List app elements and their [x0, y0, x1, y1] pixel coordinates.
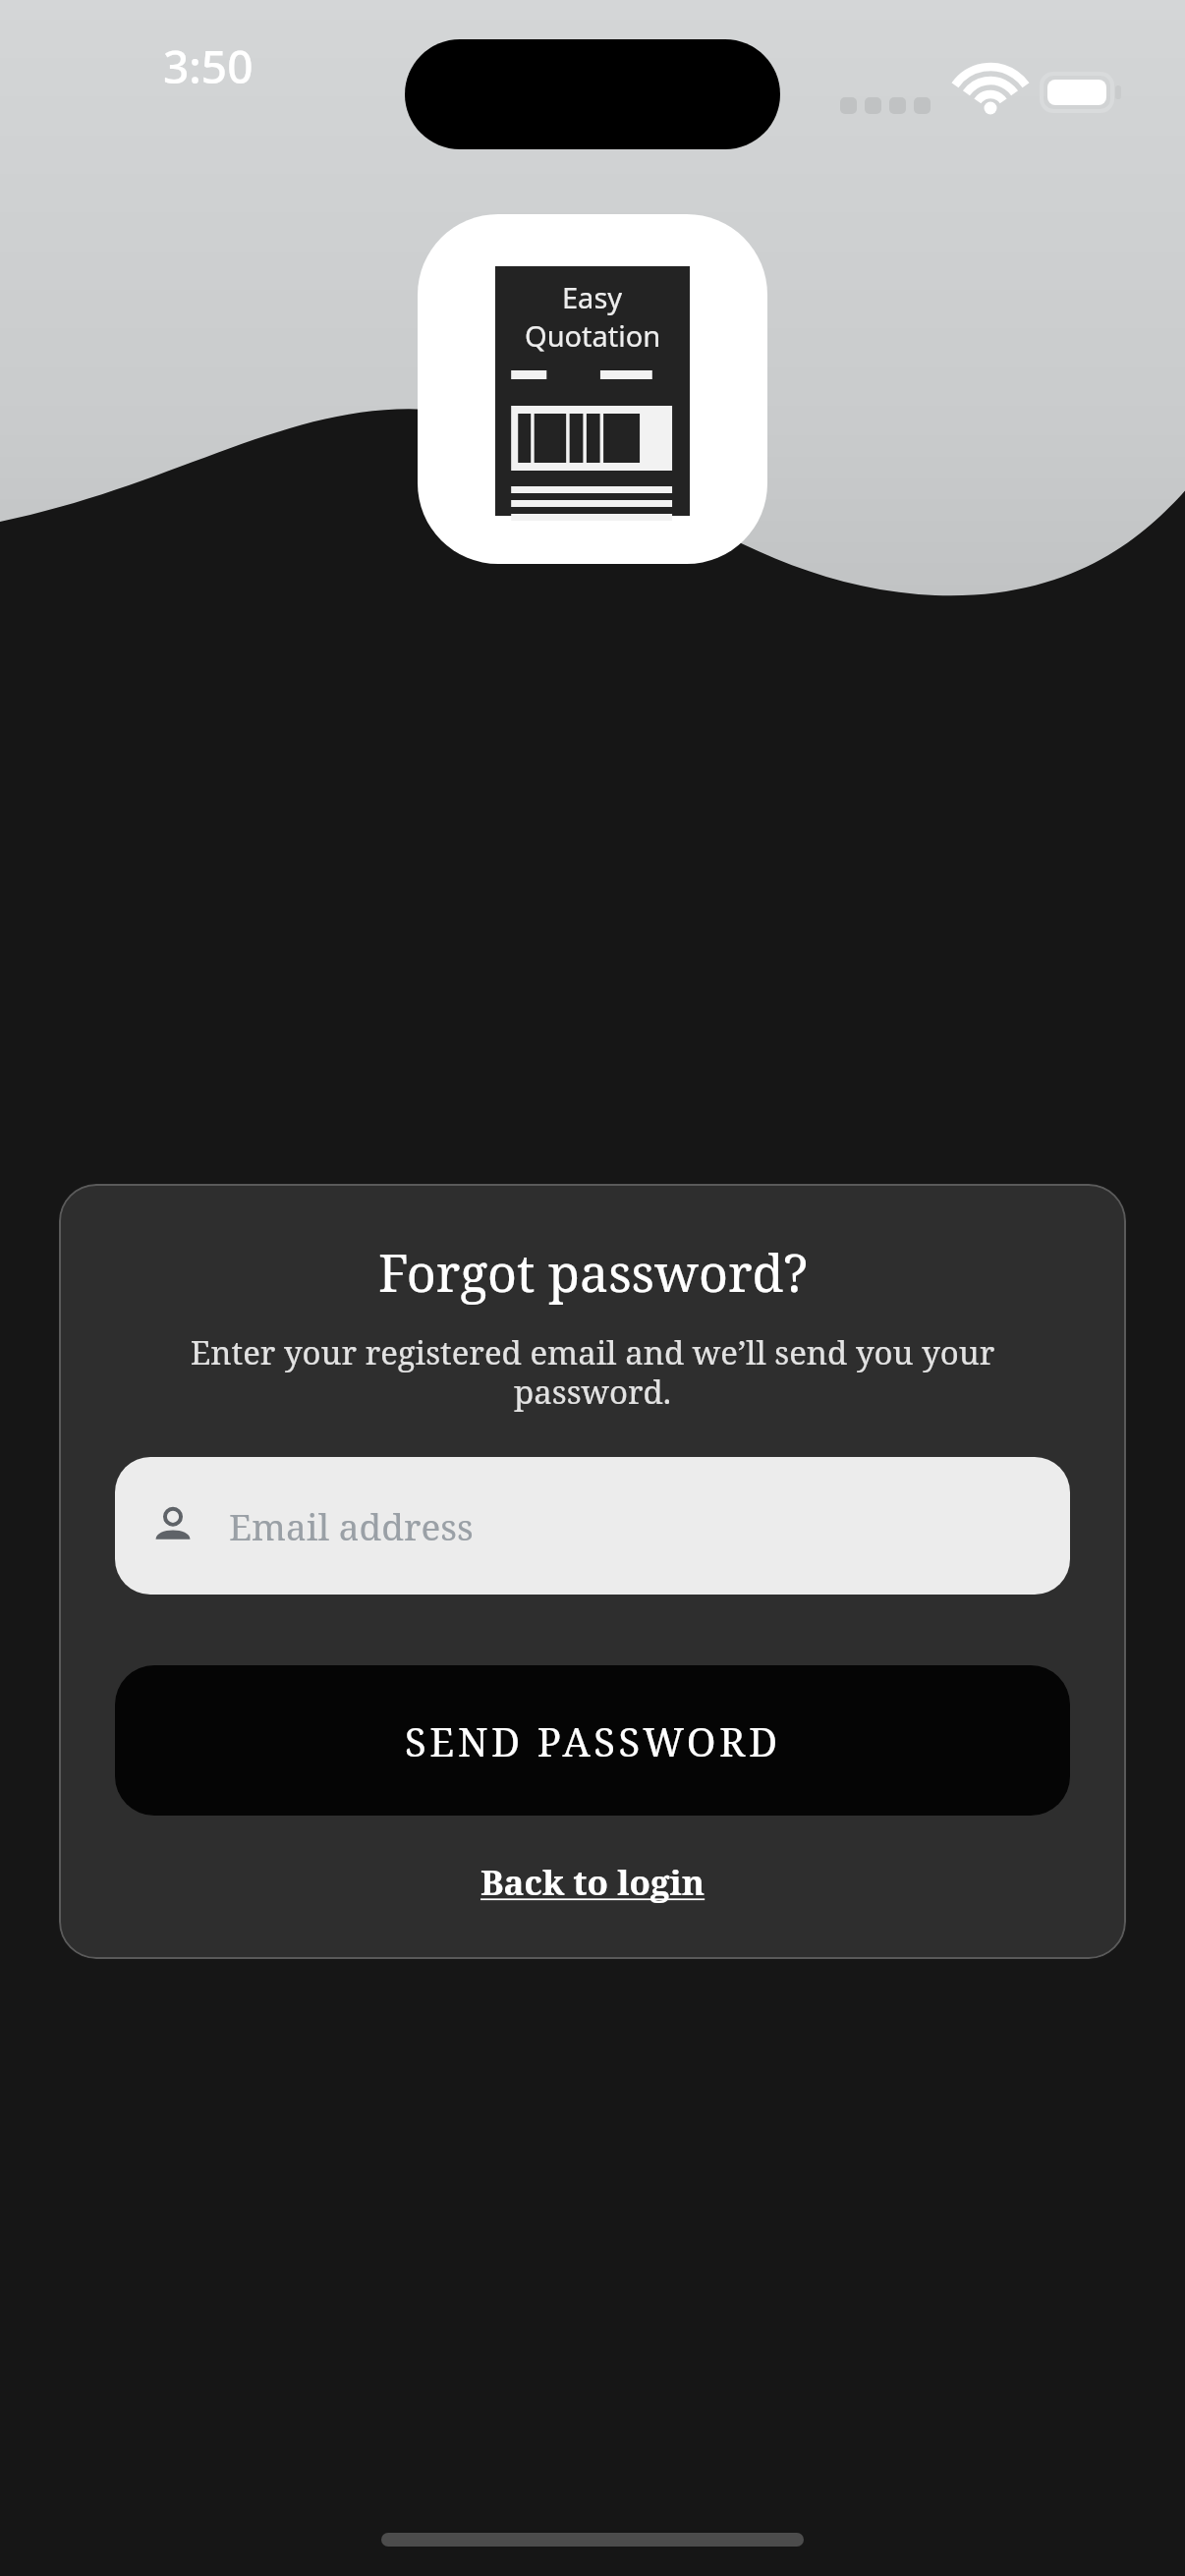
button[interactable]: SEND PASSWORD	[115, 1665, 1070, 1816]
staticText: Easy	[562, 278, 623, 316]
staticText: Email address	[229, 1501, 474, 1550]
button[interactable]: Back to login	[465, 1851, 721, 1914]
staticText: Quotation	[525, 316, 661, 355]
staticText: Forgot password?	[378, 1237, 808, 1307]
staticText: SEND PASSWORD	[405, 1714, 781, 1767]
other: Email address	[150, 1503, 196, 1548]
staticText: Enter your registered email and we’ll se…	[115, 1330, 1070, 1414]
staticText: Back to login	[480, 1859, 705, 1906]
button[interactable]: Email address	[115, 1457, 1070, 1595]
staticText: 3:50	[163, 35, 254, 97]
